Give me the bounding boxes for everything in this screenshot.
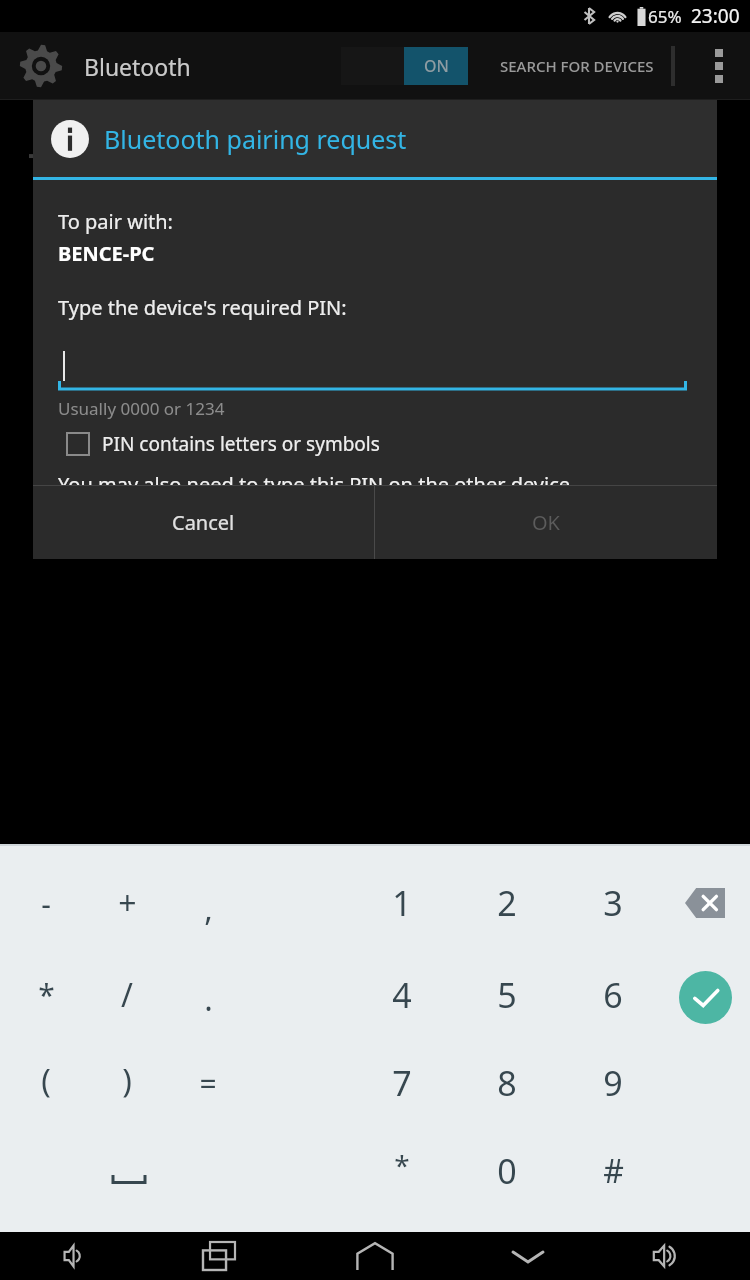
staticText: * bbox=[394, 1146, 410, 1184]
staticText: / bbox=[121, 973, 133, 1017]
staticText: Type the device's required PIN: bbox=[58, 294, 347, 321]
button[interactable]: ( bbox=[8, 1043, 84, 1119]
button[interactable]: 2 bbox=[469, 865, 545, 941]
staticText: Usually 0000 or 1234 bbox=[58, 397, 225, 420]
staticText: You may also need to type this PIN on th… bbox=[58, 471, 576, 485]
staticText: Cancel bbox=[172, 509, 235, 536]
staticText: Visible to all nearby Bluetooth devices … bbox=[108, 152, 458, 175]
staticText: 3 bbox=[603, 880, 623, 926]
button[interactable]: . bbox=[170, 961, 246, 1037]
staticText: 4 bbox=[392, 972, 412, 1018]
staticText: ) bbox=[122, 1059, 132, 1103]
staticText: . bbox=[204, 977, 213, 1021]
staticText: 1 bbox=[392, 880, 412, 926]
button[interactable]: SEARCH FOR DEVICES bbox=[490, 32, 664, 100]
button[interactable]: , bbox=[170, 871, 246, 947]
staticText: 0 bbox=[497, 1148, 517, 1194]
staticText: To pair with: bbox=[58, 208, 173, 235]
staticText: Bluetooth bbox=[84, 51, 191, 82]
button[interactable]: Space bbox=[84, 1140, 174, 1216]
button[interactable]: Settings bbox=[18, 43, 64, 89]
staticText: 2 bbox=[497, 880, 517, 926]
staticText: ( bbox=[41, 1059, 51, 1103]
staticText: BENCE-PC bbox=[58, 240, 155, 267]
staticText: 8 bbox=[497, 1060, 517, 1106]
staticText: AVAILABLE DEVICES bbox=[40, 205, 191, 227]
button[interactable]: PIN input bbox=[58, 349, 687, 391]
button[interactable]: 9 bbox=[575, 1045, 651, 1121]
button[interactable]: * bbox=[8, 956, 84, 1032]
button[interactable]: * bbox=[364, 1127, 440, 1203]
button[interactable]: iRULU X7 bbox=[0, 108, 750, 180]
button[interactable]: Cancel bbox=[33, 486, 374, 559]
staticText: PIN contains letters or symbols bbox=[102, 431, 380, 457]
staticText: 6 bbox=[603, 972, 623, 1018]
staticText: Bluetooth pairing request bbox=[104, 122, 407, 156]
staticText: 65% bbox=[648, 5, 682, 28]
button[interactable]: Volume down bbox=[42, 1232, 110, 1280]
button[interactable]: 3 bbox=[575, 865, 651, 941]
staticText: 7 bbox=[392, 1060, 412, 1106]
button[interactable]: 8 bbox=[469, 1045, 545, 1121]
staticText: SEARCH FOR DEVICES bbox=[500, 56, 654, 76]
staticText: * bbox=[38, 974, 55, 1015]
staticText: OK bbox=[532, 509, 560, 536]
staticText: = bbox=[199, 1063, 217, 1104]
staticText: # bbox=[603, 1149, 624, 1193]
button[interactable]: PIN contains letters or symbols bbox=[58, 431, 380, 457]
button[interactable]: - bbox=[8, 865, 84, 941]
button[interactable]: # bbox=[575, 1133, 651, 1209]
staticText: 9 bbox=[603, 1060, 623, 1106]
button[interactable]: Home bbox=[341, 1232, 409, 1280]
button[interactable]: = bbox=[170, 1045, 246, 1121]
button[interactable]: / bbox=[89, 957, 165, 1033]
button[interactable]: Hide keyboard bbox=[494, 1232, 562, 1280]
staticText: - bbox=[41, 883, 51, 924]
staticText: iRULU X7 bbox=[108, 118, 198, 147]
button[interactable]: 7 bbox=[364, 1045, 440, 1121]
staticText: 23:00 bbox=[691, 3, 740, 29]
button[interactable]: 0 bbox=[469, 1133, 545, 1209]
button[interactable]: 5 bbox=[469, 957, 545, 1033]
button[interactable]: 6 bbox=[575, 957, 651, 1033]
button[interactable]: Enter bbox=[663, 955, 747, 1039]
button[interactable]: Backspace bbox=[663, 861, 747, 945]
button[interactable]: More options bbox=[688, 32, 750, 100]
staticText: 5 bbox=[497, 972, 517, 1018]
button[interactable]: 4 bbox=[364, 957, 440, 1033]
staticText: + bbox=[118, 881, 137, 925]
button[interactable]: 1 bbox=[364, 865, 440, 941]
staticText: , bbox=[204, 887, 213, 931]
button[interactable]: Bluetooth on off bbox=[341, 47, 468, 85]
button[interactable]: + bbox=[89, 865, 165, 941]
staticText: ON bbox=[424, 55, 449, 77]
button[interactable]: Volume up bbox=[633, 1232, 701, 1280]
button[interactable]: Recents bbox=[185, 1232, 253, 1280]
button[interactable]: ) bbox=[89, 1043, 165, 1119]
